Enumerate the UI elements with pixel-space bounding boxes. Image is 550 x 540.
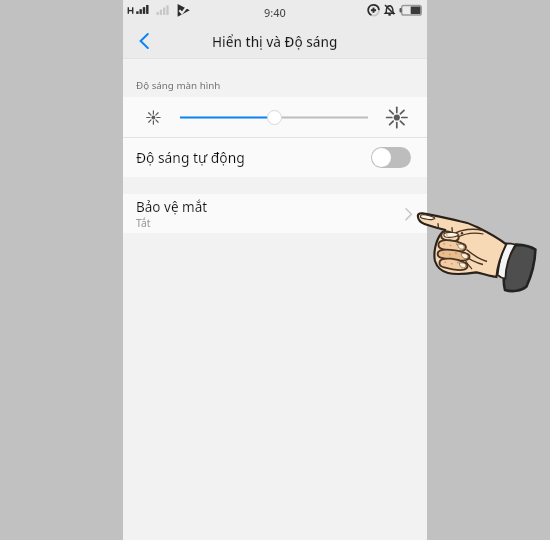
other: Open bbox=[405, 207, 413, 221]
staticText: Độ sáng màn hình bbox=[136, 79, 221, 92]
button[interactable]: Automatic brightness toggle, off bbox=[371, 147, 411, 168]
staticText: Tắt bbox=[136, 216, 151, 230]
staticText: 9:40 bbox=[264, 5, 286, 20]
staticText: Độ sáng tự động bbox=[136, 148, 245, 167]
staticText: Hiển thị và Độ sáng bbox=[212, 33, 338, 51]
button[interactable]: Back bbox=[127, 24, 161, 58]
button[interactable]: Bảo vệ mắt bbox=[123, 194, 427, 233]
button[interactable]: Screen brightness slider bbox=[123, 97, 427, 138]
button[interactable]: Độ sáng tự động bbox=[123, 138, 427, 177]
staticText: Bảo vệ mắt bbox=[136, 198, 208, 216]
